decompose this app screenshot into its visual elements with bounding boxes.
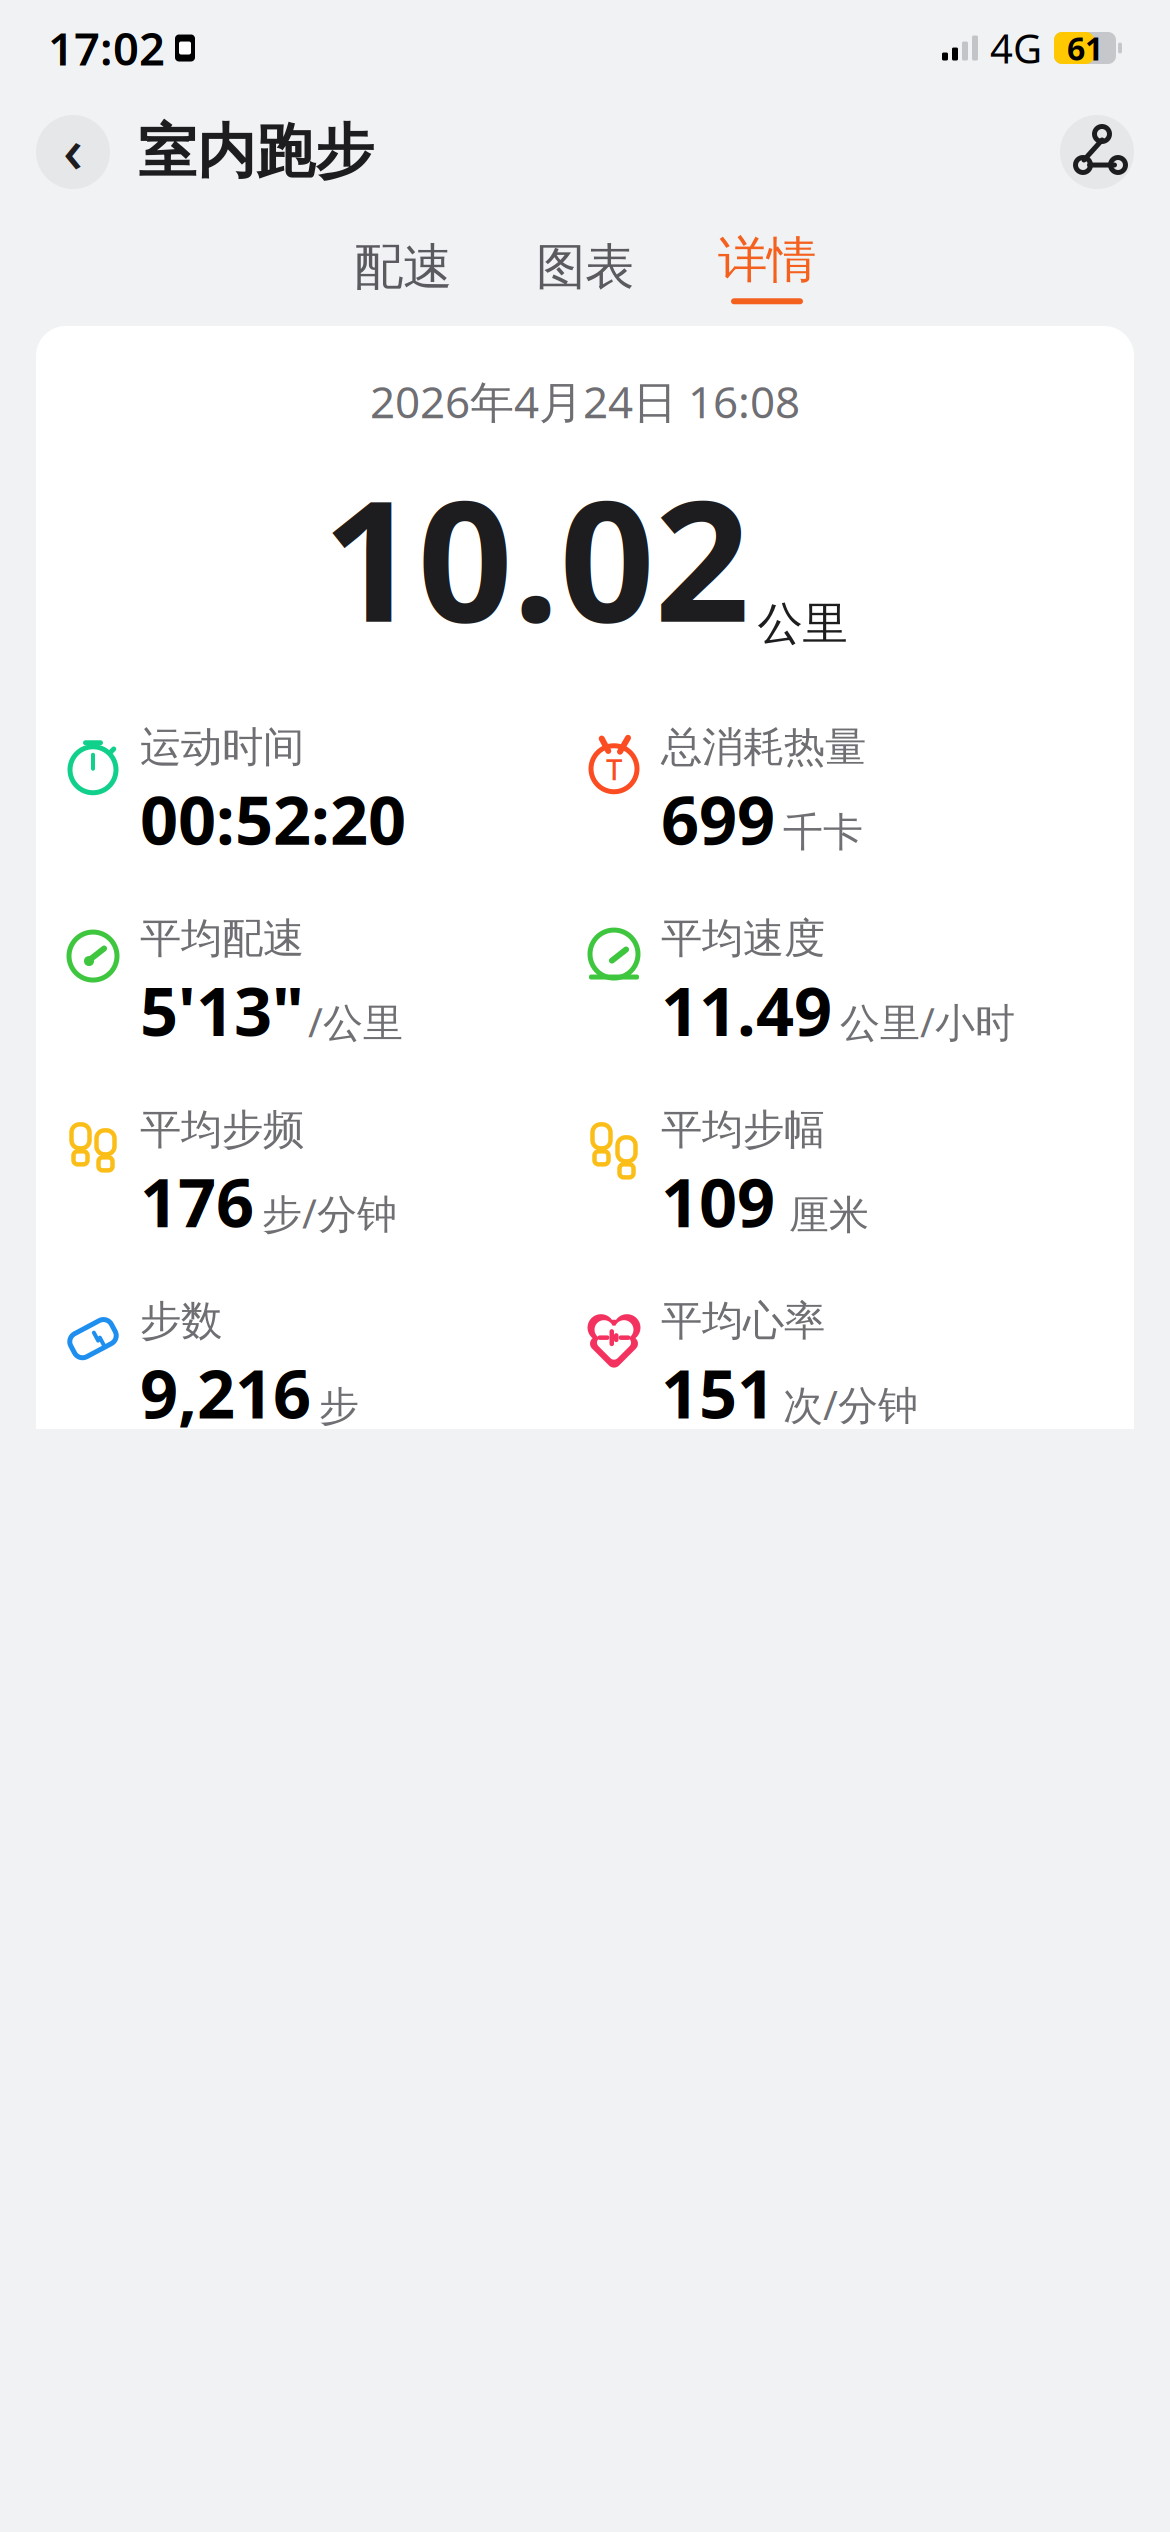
staticText: ‹ — [63, 108, 83, 190]
staticText: 4G — [990, 21, 1042, 74]
staticText: 2026年4月24日 16:08 — [370, 372, 800, 430]
staticText: 176 — [140, 1157, 254, 1246]
staticText: 配速 — [354, 237, 452, 297]
staticText: 步/分钟 — [262, 1186, 397, 1240]
staticText: 699 — [661, 774, 775, 863]
staticText: 平均步频 — [140, 1104, 304, 1155]
staticText: T — [606, 749, 622, 788]
staticText: 17:02 — [48, 18, 165, 78]
staticText: 详情 — [718, 230, 816, 290]
staticText: 5'13" — [140, 966, 304, 1054]
staticText: 步数 — [140, 1296, 222, 1346]
staticText: 11.49 — [661, 966, 832, 1054]
staticText: 10.02 — [322, 446, 749, 668]
staticText: 9,216 — [140, 1348, 311, 1437]
staticText: 109 — [661, 1157, 775, 1246]
staticText: 平均心率 — [661, 1296, 825, 1346]
staticText: 总消耗热量 — [661, 722, 866, 773]
button[interactable]: 详情 — [700, 230, 834, 304]
staticText: 图表 — [536, 237, 634, 297]
staticText: 平均配速 — [140, 913, 304, 964]
staticText: 运动时间 — [140, 722, 304, 773]
staticText: 公里 — [757, 596, 847, 652]
staticText: 次/分钟 — [783, 1378, 918, 1431]
button[interactable]: 配速 — [336, 229, 470, 305]
staticText: 151 — [661, 1348, 775, 1437]
staticText: 厘米 — [789, 1190, 869, 1240]
button[interactable]: 分享 — [1060, 115, 1134, 189]
button[interactable]: 返回 — [36, 108, 110, 196]
staticText: 千卡 — [783, 808, 863, 857]
staticText: 公里/小时 — [840, 995, 1015, 1048]
staticText: 步 — [319, 1382, 359, 1431]
staticText: /公里 — [308, 995, 403, 1048]
staticText: 平均步幅 — [661, 1104, 825, 1155]
staticText: 61 — [1067, 27, 1103, 69]
staticText: 00:52:20 — [140, 774, 406, 863]
staticText: 室内跑步 — [138, 116, 374, 188]
button[interactable]: 图表 — [518, 229, 652, 305]
staticText: 平均速度 — [661, 913, 825, 964]
